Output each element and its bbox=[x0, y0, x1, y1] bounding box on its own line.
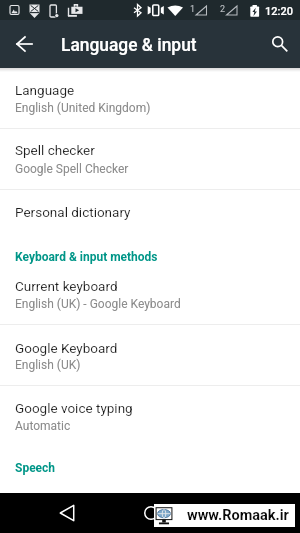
staticText: Current keyboard bbox=[15, 278, 118, 294]
staticText: Google Spell Checker bbox=[15, 162, 129, 176]
button[interactable]: Navigate up bbox=[1, 20, 47, 68]
staticText: Personal dictionary bbox=[15, 204, 131, 220]
button[interactable]: Home bbox=[129, 493, 173, 533]
staticText: Speech bbox=[15, 461, 56, 475]
staticText: Spell checker bbox=[15, 142, 95, 158]
staticText: Google voice typing bbox=[15, 400, 133, 416]
staticText: 1 bbox=[190, 4, 196, 15]
button[interactable]: Spell checker bbox=[0, 129, 300, 189]
staticText: English (United Kingdom) bbox=[15, 101, 151, 115]
staticText: Google Keyboard bbox=[15, 340, 118, 356]
staticText: English (UK) - Google Keyboard bbox=[15, 297, 181, 311]
staticText: Automatic bbox=[15, 419, 71, 433]
staticText: English (UK) bbox=[15, 358, 81, 372]
button[interactable]: Google Keyboard bbox=[0, 325, 300, 385]
button[interactable]: Personal dictionary bbox=[0, 190, 300, 234]
button[interactable]: Search bbox=[260, 20, 300, 68]
button[interactable]: Recent apps bbox=[213, 493, 257, 533]
staticText: www.Romaak.ir bbox=[187, 507, 289, 524]
staticText: Keyboard & input methods bbox=[15, 250, 158, 264]
staticText: 2 bbox=[220, 4, 226, 15]
staticText: Language bbox=[15, 82, 75, 98]
staticText: 12:20 bbox=[265, 5, 293, 18]
button[interactable]: Back bbox=[45, 493, 89, 533]
button[interactable]: Language bbox=[0, 68, 300, 128]
staticText: Language & input bbox=[61, 34, 197, 56]
button[interactable]: Current keyboard bbox=[0, 264, 300, 324]
button[interactable]: Google voice typing bbox=[0, 386, 300, 447]
